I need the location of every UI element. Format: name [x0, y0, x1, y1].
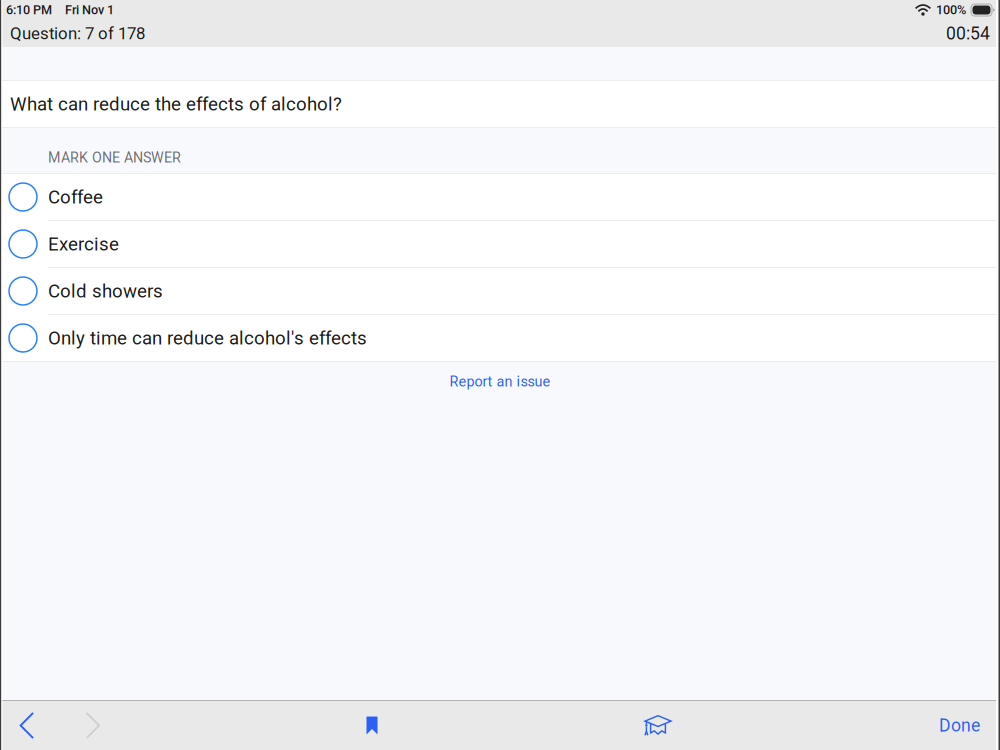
- staticText: Question: 7 of 178: [10, 24, 145, 43]
- button[interactable]: Done: [939, 701, 980, 750]
- staticText: 00:54: [946, 23, 990, 44]
- staticText: What can reduce the effects of alcohol?: [10, 93, 342, 115]
- staticText: Only time can reduce alcohol's effects: [48, 327, 367, 349]
- button[interactable]: Cold showers: [0, 268, 1000, 315]
- staticText: Cold showers: [48, 280, 163, 302]
- staticText: Coffee: [48, 186, 103, 208]
- button[interactable]: Coffee: [0, 174, 1000, 221]
- button[interactable]: Next question: [54, 701, 132, 750]
- button[interactable]: Report an issue: [0, 362, 1000, 401]
- button[interactable]: Bookmark: [344, 701, 400, 750]
- staticText: Done: [939, 715, 980, 736]
- button[interactable]: Only time can reduce alcohol's effects: [0, 315, 1000, 362]
- staticText: Report an issue: [449, 373, 550, 390]
- staticText: MARK ONE ANSWER: [48, 149, 181, 166]
- staticText: Exercise: [48, 233, 119, 255]
- staticText: 6:10 PM: [6, 3, 52, 17]
- staticText: 100%: [936, 3, 966, 17]
- button[interactable]: Exercise: [0, 221, 1000, 268]
- button[interactable]: Study guide: [630, 701, 686, 750]
- staticText: Fri Nov 1: [65, 3, 114, 17]
- button[interactable]: Previous question: [0, 701, 54, 750]
